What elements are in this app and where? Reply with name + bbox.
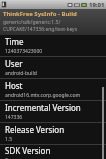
button[interactable]: User (0, 57, 106, 79)
staticText: Release Version (5, 124, 65, 135)
button[interactable]: Release Version (0, 123, 106, 145)
staticText: Host (5, 80, 23, 91)
staticText: 3 (5, 157, 8, 159)
staticText: android16.mtv.corp.google.com (5, 92, 81, 99)
staticText: 19:01 (89, 1, 105, 9)
staticText: 147336 (5, 114, 23, 121)
button[interactable]: ThinkFree SysInfo - Build (0, 9, 106, 35)
staticText: SDK Version (5, 145, 51, 156)
button[interactable]: Time (0, 35, 106, 57)
staticText: generic/sdk/generic:1.5/ (3, 19, 61, 26)
staticText: User (5, 58, 23, 69)
staticText: Time (5, 36, 24, 47)
staticText: 1.5 (5, 136, 13, 143)
staticText: ThinkFree SysInfo - Build (3, 10, 77, 18)
button[interactable]: SDK Version (0, 145, 106, 159)
other: Notification (1, 1, 8, 8)
button[interactable]: Host (0, 79, 106, 101)
staticText: Incremental Version (5, 102, 81, 113)
staticText: android-build (5, 70, 37, 77)
button[interactable]: Incremental Version (0, 101, 106, 123)
staticText: 1240373423000 (5, 48, 43, 55)
staticText: CUPCAKE/147336:eng/test-keys (3, 26, 78, 33)
